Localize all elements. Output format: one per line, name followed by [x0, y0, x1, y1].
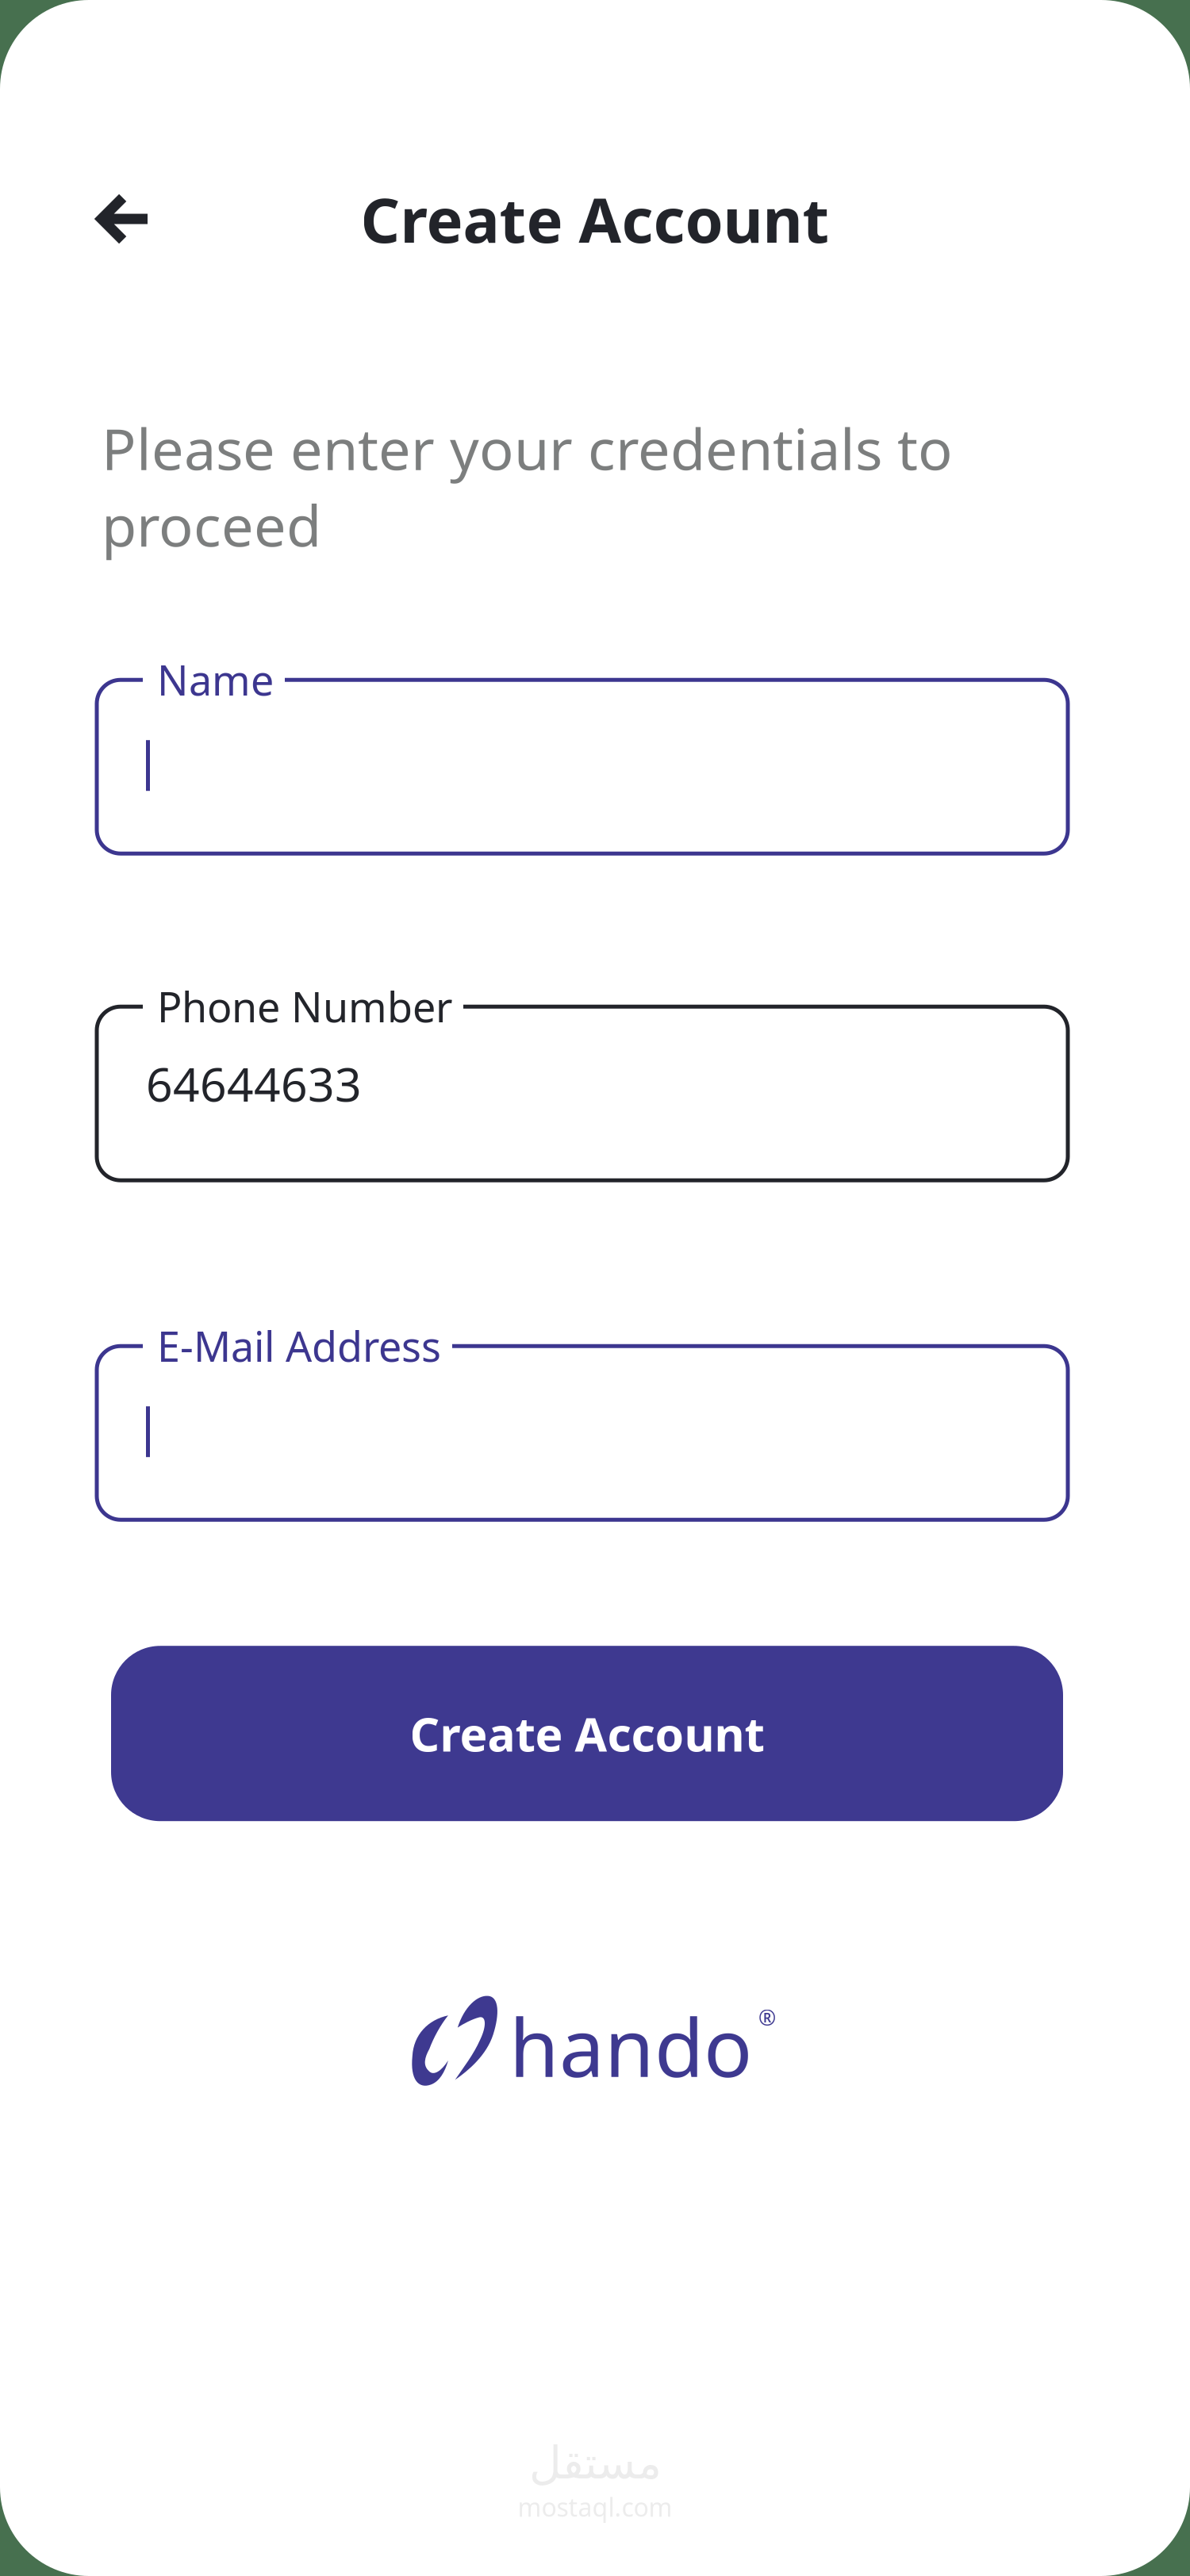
staticText: Phone Number	[157, 979, 452, 1034]
staticText: Create Account	[361, 178, 829, 260]
staticText: proceed	[102, 487, 321, 562]
button[interactable]: 64644633	[97, 1007, 1068, 1180]
staticText: Please enter your credentials to	[102, 410, 953, 486]
staticText: mostaql.com	[518, 2490, 672, 2524]
staticText: hando	[509, 1992, 752, 2099]
staticText: ®	[758, 2003, 776, 2031]
button[interactable]: E-Mail Address	[97, 1346, 1068, 1520]
button[interactable]: Create Account	[111, 1646, 1063, 1821]
staticText: 64644633	[146, 1053, 362, 1114]
button[interactable]: Name	[97, 680, 1068, 854]
staticText: Name	[157, 652, 274, 707]
button[interactable]: Back	[81, 175, 168, 263]
staticText: Create Account	[410, 1703, 764, 1764]
staticText: مستقل	[529, 2438, 661, 2488]
staticText: E-Mail Address	[157, 1318, 441, 1373]
